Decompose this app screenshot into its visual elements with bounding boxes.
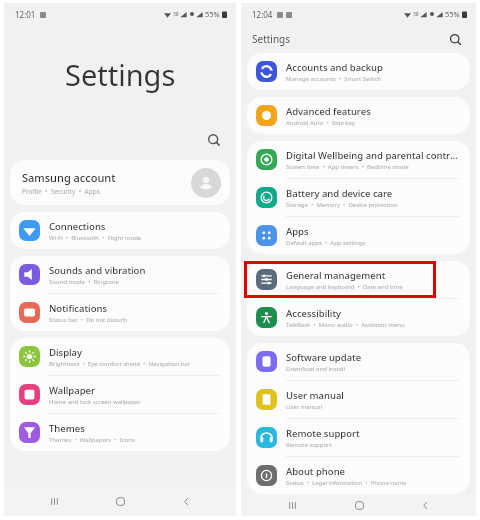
staticText: Battery and device care xyxy=(286,187,393,200)
staticText: Default apps • App settings xyxy=(286,239,366,247)
button[interactable]: Battery and device care xyxy=(247,179,470,216)
button[interactable]: Wallpaper xyxy=(10,376,230,413)
staticText: 38 xyxy=(173,11,179,18)
staticText: 12:04 xyxy=(252,9,273,20)
button[interactable]: Recents xyxy=(38,486,70,516)
staticText: Display xyxy=(49,346,83,359)
staticText: 12:01 xyxy=(15,9,36,20)
staticText: Home and lock screen wallpaper xyxy=(49,398,141,406)
button[interactable]: Home xyxy=(104,486,136,516)
staticText: General management xyxy=(286,269,386,282)
staticText: Sounds and vibration xyxy=(49,264,146,277)
button[interactable]: Home xyxy=(343,494,375,516)
staticText: Themes xyxy=(49,422,85,435)
staticText: Brightness • Eye comfort shield • Naviga… xyxy=(49,360,191,368)
staticText: 38 xyxy=(413,11,419,18)
staticText: About phone xyxy=(286,465,346,478)
button[interactable]: Digital Wellbeing and parental controls xyxy=(247,141,470,178)
staticText: Notifications xyxy=(49,302,108,315)
staticText: User manual xyxy=(286,403,322,411)
staticText: Status bar • Do not disturb xyxy=(49,316,127,324)
staticText: 55% xyxy=(445,9,460,19)
button[interactable]: Sounds and vibration xyxy=(10,256,230,293)
staticText: Settings xyxy=(252,32,291,46)
button[interactable]: Apps xyxy=(247,217,470,254)
button[interactable]: Accessibility xyxy=(247,299,470,336)
staticText: Download and install xyxy=(286,365,346,373)
staticText: Status • Legal information • Phone name xyxy=(286,479,407,487)
staticText: TalkBack • Mono audio • Assistant menu xyxy=(286,321,405,329)
button[interactable]: Notifications xyxy=(10,294,230,331)
staticText: Accessibility xyxy=(286,307,342,320)
button[interactable]: Display xyxy=(10,338,230,375)
staticText: Settings xyxy=(65,55,176,94)
staticText: Profile • Security • Apps xyxy=(22,187,100,196)
staticText: Manage accounts • Smart Switch xyxy=(286,75,382,83)
button[interactable]: Back xyxy=(170,486,202,516)
staticText: Wi-Fi • Bluetooth • Flight mode xyxy=(49,234,142,242)
button[interactable]: Back xyxy=(409,494,441,516)
button[interactable]: Advanced features xyxy=(247,97,470,134)
staticText: Android Auto • Side key xyxy=(286,119,355,127)
staticText: Remote support xyxy=(286,441,332,449)
staticText: Advanced features xyxy=(286,105,371,118)
button[interactable]: General management xyxy=(247,261,470,298)
staticText: Wallpaper xyxy=(49,384,95,397)
staticText: Connections xyxy=(49,220,106,233)
button[interactable]: Search xyxy=(201,127,227,153)
button[interactable]: Search xyxy=(443,27,467,51)
staticText: Remote support xyxy=(286,427,360,440)
staticText: Sound mode • Ringtone xyxy=(49,278,119,286)
staticText: Language and keyboard • Date and time xyxy=(286,283,403,291)
button[interactable]: Themes xyxy=(10,414,230,451)
staticText: Storage • Memory • Device protection xyxy=(286,201,398,209)
staticText: 55% xyxy=(205,9,220,19)
staticText: Software update xyxy=(286,351,362,364)
button[interactable]: Software update xyxy=(247,343,470,380)
button[interactable]: User manual xyxy=(247,381,470,418)
staticText: Themes • Wallpapers • Icons xyxy=(49,436,135,444)
button[interactable]: Accounts and backup xyxy=(247,53,470,90)
staticText: Apps xyxy=(286,225,309,238)
staticText: Accounts and backup xyxy=(286,61,383,74)
button[interactable]: Recents xyxy=(276,494,308,516)
button[interactable]: Samsung account xyxy=(10,160,230,205)
staticText: Screen time • App timers • Bedtime mode xyxy=(286,163,409,171)
button[interactable]: Connections xyxy=(10,212,230,249)
staticText: Digital Wellbeing and parental controls xyxy=(286,149,462,162)
staticText: User manual xyxy=(286,389,344,402)
button[interactable]: Remote support xyxy=(247,419,470,456)
button[interactable]: About phone xyxy=(247,457,470,494)
staticText: Samsung account xyxy=(22,170,116,185)
